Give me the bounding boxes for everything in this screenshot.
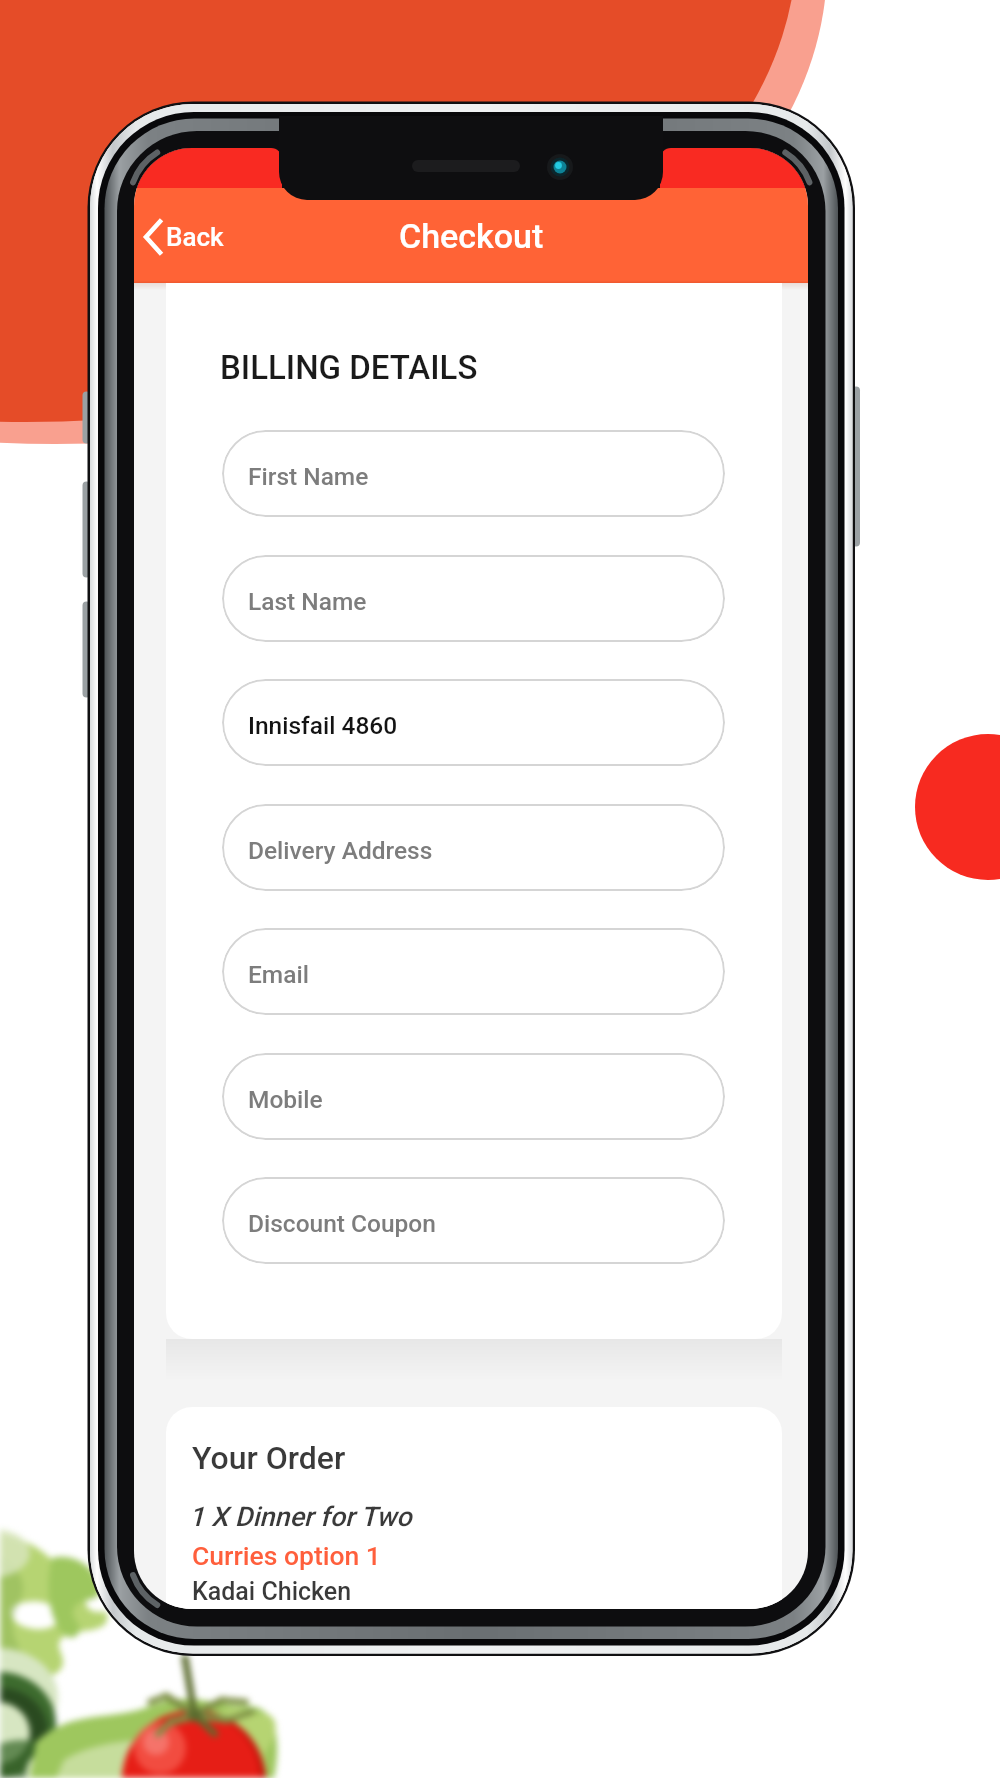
button[interactable]: Mobile	[222, 1053, 725, 1140]
staticText: Discount Coupon	[248, 1209, 436, 1238]
staticText: 1 X Dinner for Two	[189, 1501, 412, 1533]
staticText: BILLING DETAILS	[220, 348, 478, 387]
button[interactable]: Discount Coupon	[222, 1177, 725, 1264]
staticText: First Name	[248, 462, 369, 491]
staticText: Your Order	[192, 1439, 346, 1477]
button[interactable]: Last Name	[222, 555, 725, 642]
staticText: Back	[166, 222, 224, 252]
button[interactable]: Delivery Address	[222, 804, 725, 891]
staticText: Delivery Address	[248, 836, 433, 865]
button[interactable]: Innisfail 4860	[222, 679, 725, 766]
staticText: Kadai Chicken	[192, 1577, 352, 1606]
staticText: Email	[248, 960, 309, 989]
staticText: Curries option 1	[192, 1540, 381, 1571]
button[interactable]: First Name	[222, 430, 725, 517]
staticText: Innisfail 4860	[248, 711, 398, 740]
staticText: Last Name	[248, 587, 367, 616]
staticText: Checkout	[399, 216, 544, 256]
button[interactable]: Back	[136, 210, 230, 264]
button[interactable]: Email	[222, 928, 725, 1015]
staticText: Mobile	[248, 1085, 323, 1114]
